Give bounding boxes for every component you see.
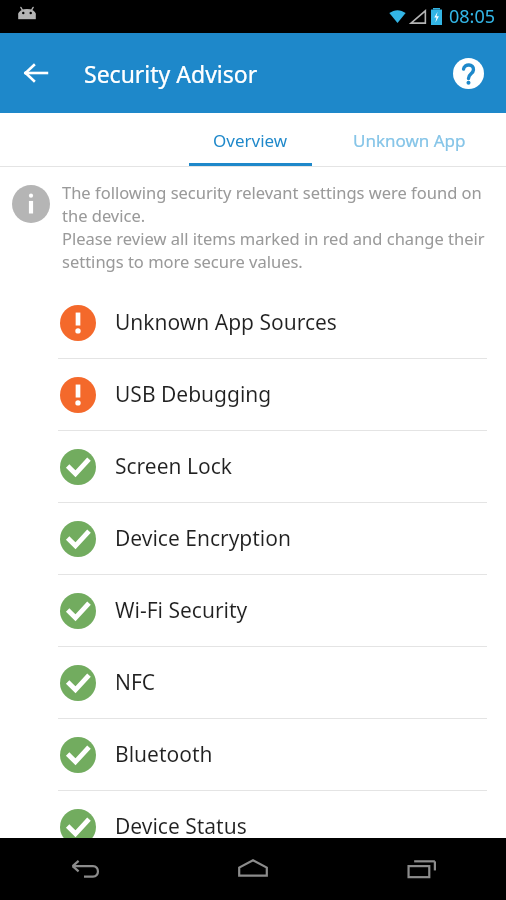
button[interactable]: Recent apps — [337, 838, 506, 900]
staticText: Unknown App Sources — [115, 308, 337, 337]
staticText: NFC — [115, 668, 156, 697]
staticText: Security Advisor — [84, 58, 258, 89]
staticText: Screen Lock — [115, 452, 232, 481]
button[interactable]: Device Encryption — [0, 503, 506, 574]
button[interactable]: Bluetooth — [0, 719, 506, 790]
button[interactable]: Unknown App — [312, 113, 506, 167]
button[interactable]: Back — [0, 838, 168, 900]
staticText: USB Debugging — [115, 380, 272, 409]
staticText: Device Encryption — [115, 524, 291, 553]
staticText: Unknown App — [353, 129, 466, 152]
button[interactable]: Unknown App Sources — [0, 287, 506, 358]
button[interactable]: Screen Lock — [0, 431, 506, 502]
button[interactable]: Wi-Fi Security — [0, 575, 506, 646]
button[interactable]: NFC — [0, 647, 506, 718]
staticText: Bluetooth — [115, 740, 213, 769]
button[interactable]: Home — [168, 838, 337, 900]
staticText: The following security relevant settings… — [62, 181, 496, 273]
staticText: Wi-Fi Security — [115, 596, 248, 625]
staticText: Overview — [213, 129, 288, 152]
button[interactable]: Device Status — [0, 791, 506, 862]
staticText: 08:05 — [449, 4, 496, 29]
button[interactable]: Overview — [189, 113, 312, 167]
button[interactable]: USB Debugging — [0, 359, 506, 430]
button[interactable]: Back — [8, 45, 64, 101]
button[interactable]: Help — [444, 49, 492, 97]
staticText: Device Status — [115, 812, 247, 841]
